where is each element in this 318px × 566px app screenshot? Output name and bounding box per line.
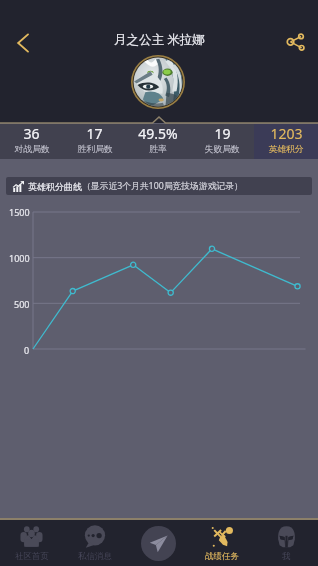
staticText: 1000: [9, 252, 30, 264]
staticText: 胜率: [149, 144, 167, 155]
staticText: 0: [24, 344, 30, 356]
staticText: 对战局数: [14, 144, 50, 155]
button[interactable]: 私信消息: [63, 520, 126, 566]
staticText: （显示近3个月共100局竞技场游戏记录）: [82, 180, 243, 192]
staticText: 月之公主 米拉娜: [114, 31, 205, 48]
button[interactable]: 1203: [254, 124, 318, 159]
staticText: 49.5%: [138, 124, 178, 143]
button[interactable]: 社区首页: [0, 520, 63, 566]
button[interactable]: 战绩任务: [190, 520, 254, 566]
staticText: 胜利局数: [77, 144, 113, 155]
staticText: 英雄积分曲线: [28, 181, 82, 192]
staticText: 17: [86, 124, 103, 143]
staticText: 1500: [9, 206, 30, 218]
button[interactable]: Post: [126, 520, 190, 566]
button[interactable]: 17: [63, 124, 126, 159]
staticText: 战绩任务: [205, 551, 239, 562]
button[interactable]: 49.5%: [126, 124, 190, 159]
staticText: 我: [282, 551, 291, 562]
staticText: 私信消息: [78, 551, 112, 562]
staticText: 36: [23, 124, 40, 143]
staticText: 1203: [270, 124, 303, 143]
button[interactable]: 19: [190, 124, 254, 159]
button[interactable]: 英雄积分曲线: [6, 177, 312, 195]
button[interactable]: Back: [8, 28, 38, 58]
button[interactable]: 36: [0, 124, 63, 159]
staticText: 社区首页: [15, 551, 49, 562]
staticText: 500: [14, 298, 30, 310]
staticText: 英雄积分: [268, 144, 304, 155]
staticText: 失败局数: [204, 144, 240, 155]
button[interactable]: Share: [279, 26, 309, 56]
button[interactable]: 我: [254, 520, 318, 566]
staticText: 19: [214, 124, 231, 143]
